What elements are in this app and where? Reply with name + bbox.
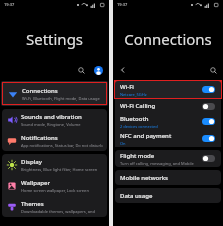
staticText: Sound mode, Ringtone, Volume <box>21 122 81 127</box>
button[interactable]: Wallpaper <box>2 175 107 196</box>
button[interactable]: Notifications <box>2 130 107 151</box>
staticText: Wi-Fi Calling <box>120 102 156 110</box>
staticText: Connections <box>113 29 223 49</box>
staticText: Turn off calling, messaging, and Mobile … <box>120 161 198 166</box>
staticText: Wi-Fi, Bluetooth, Flight mode, Data usag… <box>22 96 100 101</box>
button[interactable]: Sounds and vibration <box>2 109 107 130</box>
staticText: Mobile networks <box>120 174 168 182</box>
button[interactable]: Search <box>207 64 219 76</box>
staticText: Netcare_5GHz <box>120 92 147 97</box>
button[interactable]: Wi-Fi Calling off <box>201 102 216 111</box>
button[interactable]: Data usage <box>115 188 221 203</box>
button[interactable]: Bluetooth on <box>201 117 216 126</box>
staticText: Notifications <box>21 134 58 142</box>
button[interactable]: Themes <box>2 196 107 217</box>
staticText: App notifications, Status bar, Do not di… <box>21 143 103 148</box>
staticText: Downloadable themes, wallpapers, and ico… <box>21 209 103 214</box>
button[interactable]: Connections <box>3 83 106 104</box>
staticText: Display <box>21 158 42 166</box>
staticText: Home screen wallpaper, Lock screen wallp… <box>21 188 103 193</box>
button[interactable]: Bluetooth <box>115 113 221 130</box>
staticText: 19:37 <box>117 2 128 7</box>
staticText: Flight mode <box>120 152 155 160</box>
button[interactable]: NFC and payment <box>115 130 221 147</box>
button[interactable]: Flight mode off <box>201 154 216 163</box>
staticText: Brightness, Blue light filter, Home scre… <box>21 167 98 172</box>
staticText: Bluetooth <box>120 115 149 123</box>
button[interactable]: Display <box>2 154 107 175</box>
staticText: Wi-Fi <box>120 83 134 91</box>
button[interactable]: Search <box>75 64 87 76</box>
staticText: Themes <box>21 200 44 208</box>
staticText: On <box>120 141 126 146</box>
staticText: Settings <box>0 29 109 49</box>
staticText: 2 devices connected <box>120 124 158 129</box>
staticText: 19:37 <box>4 2 15 7</box>
staticText: Wallpaper <box>21 179 51 187</box>
staticText: Data usage <box>120 192 153 200</box>
button[interactable]: NFC and payment on <box>201 134 216 143</box>
button[interactable]: Wi-Fi Calling <box>115 99 221 113</box>
staticText: Connections <box>22 87 58 95</box>
button[interactable]: Back <box>117 64 129 76</box>
button[interactable]: Wi-Fi <box>115 81 221 98</box>
button[interactable]: Account <box>92 64 104 76</box>
button[interactable]: Wi-Fi on <box>201 85 216 94</box>
staticText: NFC and payment <box>120 132 172 140</box>
button[interactable]: Flight mode <box>115 150 221 167</box>
staticText: Sounds and vibration <box>21 113 82 121</box>
button[interactable]: Mobile networks <box>115 170 221 185</box>
